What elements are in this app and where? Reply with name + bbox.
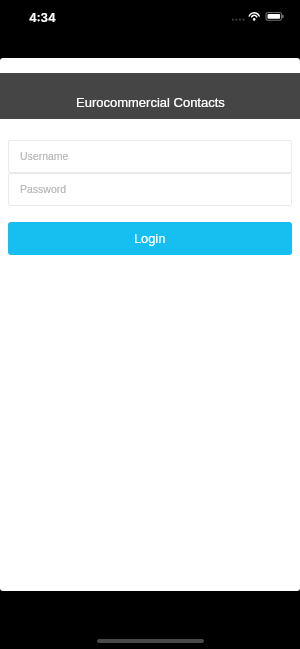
staticText: Password — [20, 183, 67, 195]
staticText: Username — [20, 150, 69, 162]
staticText: 4:34 — [29, 11, 56, 25]
staticText: Eurocommercial Contacts — [76, 95, 225, 110]
button[interactable]: Password — [8, 173, 292, 206]
other: Cellular signal — [231, 16, 245, 23]
other: Battery full — [265, 12, 284, 21]
other: Home indicator — [97, 639, 204, 643]
staticText: Login — [134, 231, 166, 245]
button[interactable]: Login — [8, 222, 292, 255]
other: Wi-Fi — [247, 11, 262, 23]
button[interactable]: Username — [8, 140, 292, 173]
